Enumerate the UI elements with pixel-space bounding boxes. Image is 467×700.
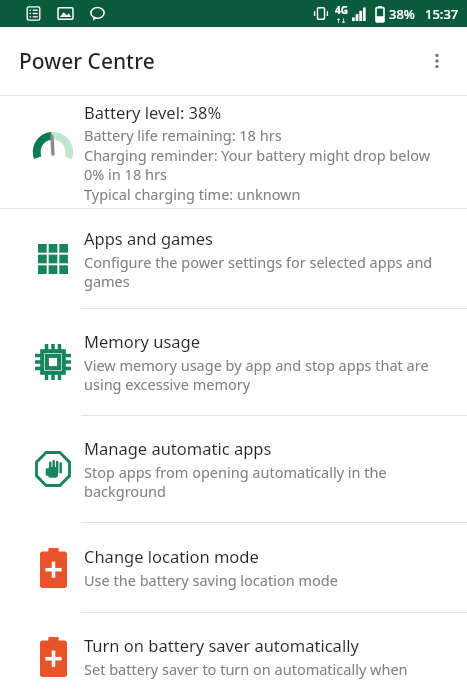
- button[interactable]: Battery gauge: [0, 96, 467, 208]
- other: Stop automatic apps: [34, 450, 72, 488]
- other: Battery saver: [40, 637, 67, 677]
- button[interactable]: Memory chip: [0, 309, 467, 415]
- button[interactable]: Battery saver: [0, 613, 467, 700]
- staticText: Power Centre: [19, 47, 155, 76]
- staticText: Use the battery saving location mode: [84, 570, 338, 590]
- staticText: Set battery saver to turn on automatical…: [84, 659, 408, 679]
- button[interactable]: Apps grid: [0, 209, 467, 308]
- button[interactable]: Stop automatic apps: [0, 416, 467, 522]
- button[interactable]: Battery saver: [0, 523, 467, 612]
- staticText: Memory usage: [84, 330, 201, 352]
- staticText: Stop apps from opening automatically in …: [84, 462, 449, 501]
- other: Apps grid: [38, 244, 68, 274]
- staticText: Change location mode: [84, 545, 259, 567]
- staticText: Turn on battery saver automatically: [84, 634, 359, 656]
- other: Battery saver: [40, 548, 67, 588]
- staticText: Manage automatic apps: [84, 437, 272, 459]
- staticText: Configure the power settings for selecte…: [84, 252, 449, 291]
- staticText: Typical charging time: unknown: [84, 184, 301, 204]
- staticText: 4G: [335, 3, 348, 17]
- staticText: 38%: [389, 5, 415, 23]
- staticText: Battery level: 38%: [84, 101, 222, 123]
- other: Battery gauge: [32, 131, 74, 173]
- staticText: View memory usage by app and stop apps t…: [84, 355, 449, 394]
- other: Memory chip: [35, 344, 71, 380]
- staticText: 15:37: [425, 5, 459, 23]
- staticText: ↑↓: [336, 17, 347, 24]
- staticText: Battery life remaining: 18 hrs: [84, 125, 282, 145]
- staticText: Apps and games: [84, 227, 213, 249]
- button[interactable]: More options: [413, 37, 461, 85]
- staticText: Charging reminder: Your battery might dr…: [84, 145, 451, 184]
